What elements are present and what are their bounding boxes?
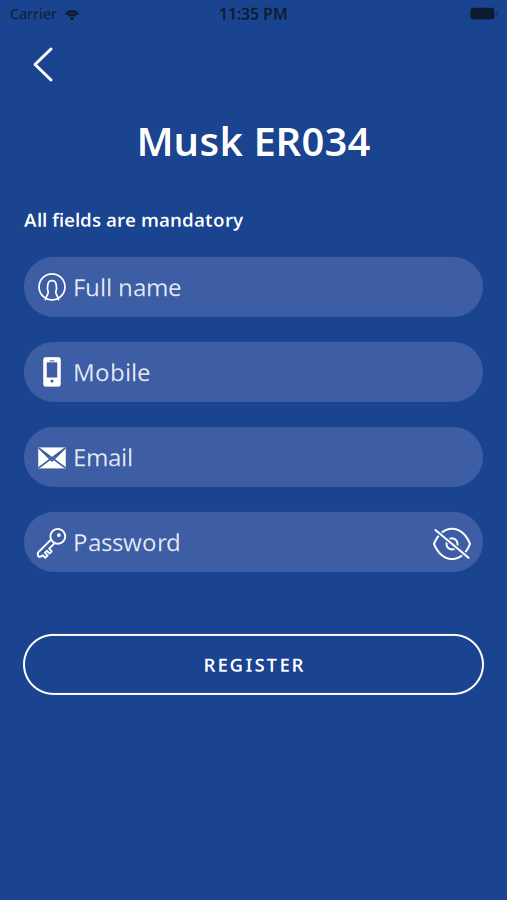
staticText: Password bbox=[73, 526, 181, 558]
button[interactable]: Show password bbox=[434, 527, 470, 557]
button[interactable]: Full name bbox=[24, 257, 483, 317]
button[interactable]: R E G I S T E R bbox=[24, 635, 483, 694]
staticText: Email bbox=[73, 441, 133, 473]
staticText: Musk ER034 bbox=[136, 114, 370, 167]
staticText: All fields are mandatory bbox=[24, 207, 243, 232]
button[interactable]: Back bbox=[0, 40, 67, 89]
button[interactable]: Password bbox=[24, 512, 483, 572]
staticText: Full name bbox=[73, 271, 182, 303]
staticText: Mobile bbox=[73, 356, 151, 388]
staticText: R E G I S T E R bbox=[203, 652, 303, 677]
button[interactable]: Mobile bbox=[24, 342, 483, 402]
staticText: 11:35 PM bbox=[219, 3, 288, 24]
button[interactable]: Email bbox=[24, 427, 483, 487]
staticText: Carrier bbox=[10, 4, 57, 23]
